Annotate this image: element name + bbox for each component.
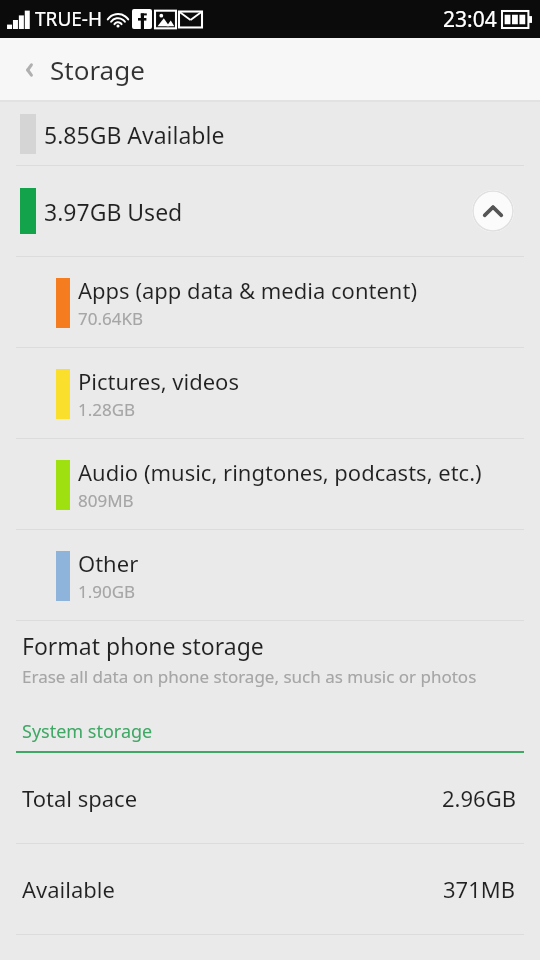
button[interactable]: Pictures, videos — [0, 348, 540, 438]
button[interactable]: Back — [14, 52, 145, 87]
other: Back — [14, 55, 44, 85]
staticText: Format phone storage — [22, 630, 264, 661]
button[interactable]: Other — [0, 530, 540, 620]
staticText: 371MB — [443, 874, 516, 904]
staticText: Total space — [22, 783, 138, 813]
staticText: TRUE-H — [35, 6, 103, 32]
button[interactable]: 5.85GB Available — [0, 102, 540, 165]
button[interactable]: 3.97GB Used — [0, 166, 540, 256]
staticText: Pictures, videos — [78, 366, 239, 396]
staticText: 809MB — [78, 489, 134, 512]
staticText: 1.90GB — [78, 580, 136, 603]
button[interactable]: Collapse — [472, 190, 514, 232]
staticText: Audio (music, ringtones, podcasts, etc.) — [78, 457, 482, 487]
staticText: 2.96GB — [442, 783, 516, 813]
staticText: Erase all data on phone storage, such as… — [22, 665, 477, 688]
staticText: Available — [22, 874, 115, 904]
button[interactable]: Total space — [0, 753, 540, 843]
button[interactable]: Apps (app data & media content) — [0, 257, 540, 347]
staticText: 23:04 — [443, 5, 497, 34]
button[interactable]: Audio (music, ringtones, podcasts, etc.) — [0, 439, 540, 529]
staticText: System storage — [22, 719, 153, 744]
staticText: Other — [78, 548, 139, 578]
staticText: 5.85GB Available — [44, 119, 225, 150]
button[interactable]: Format phone storage — [0, 621, 540, 697]
staticText: 3.97GB Used — [44, 196, 183, 227]
staticText: 1.28GB — [78, 398, 136, 421]
staticText: Apps (app data & media content) — [78, 275, 417, 305]
staticText: Storage — [50, 52, 145, 87]
button[interactable]: Available — [0, 844, 540, 934]
staticText: 70.64KB — [78, 307, 144, 330]
